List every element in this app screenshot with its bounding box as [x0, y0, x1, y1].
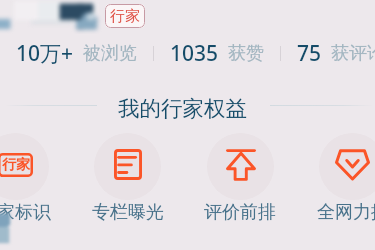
- button[interactable]: 评价前排: [195, 201, 285, 224]
- staticText: 获赞: [228, 42, 264, 65]
- staticText: 75: [297, 39, 322, 68]
- button[interactable]: 评价前排: [207, 133, 274, 200]
- staticText: 获评论: [331, 42, 375, 65]
- staticText: 1035: [170, 39, 219, 68]
- staticText: 行家: [2, 156, 30, 174]
- button[interactable]: 行家: [105, 4, 145, 28]
- button[interactable]: 专栏曝光: [94, 133, 161, 200]
- staticText: 10万+: [16, 39, 74, 68]
- staticText: 被浏览: [83, 42, 137, 65]
- button[interactable]: 专栏曝光: [83, 201, 173, 224]
- button[interactable]: 全网力推: [308, 201, 375, 224]
- staticText: 我的行家权益: [118, 95, 247, 121]
- staticText: 行家: [110, 7, 140, 26]
- button[interactable]: 行家标识: [0, 201, 60, 224]
- button[interactable]: 行家标识: [0, 133, 49, 200]
- button[interactable]: 全网力推: [319, 133, 375, 200]
